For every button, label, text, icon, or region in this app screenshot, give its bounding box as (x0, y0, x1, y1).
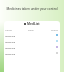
staticText: Name (5, 28, 12, 31)
staticText: Medicine (5, 52, 16, 55)
staticText: Medicine (5, 40, 16, 43)
button[interactable]: Medicine (4, 32, 60, 38)
staticText: Dose (28, 28, 34, 31)
button[interactable]: Medicine (4, 44, 60, 50)
staticText: Medicines taken under your control (2, 7, 62, 11)
button[interactable]: Medicine (4, 50, 60, 56)
button[interactable]: Medicine (4, 38, 60, 44)
staticText: Medicine (5, 34, 16, 37)
staticText: Medicine (5, 46, 16, 49)
staticText: MedList (27, 22, 40, 26)
staticText: Status (51, 28, 59, 31)
